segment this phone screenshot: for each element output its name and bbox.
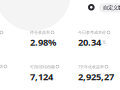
staticText: 20.34 xyxy=(78,36,101,48)
staticText: 2.98% xyxy=(30,36,56,48)
staticText: 自定义数据 xyxy=(103,4,120,11)
staticText: 可用/冻结份额 xyxy=(30,64,55,69)
staticText: 7天年化收益率 xyxy=(78,64,104,69)
staticText: 今日参考成本价 xyxy=(78,30,106,35)
staticText: 2,925,27 xyxy=(78,70,114,83)
button[interactable]: 设置 xyxy=(88,4,95,11)
staticText: 元 xyxy=(102,40,106,45)
button[interactable]: 自定义数据 xyxy=(99,3,120,12)
staticText: 7,124 xyxy=(30,70,53,83)
staticText: 持仓收益率 xyxy=(30,30,50,35)
staticText: 总市值 xyxy=(0,64,3,69)
